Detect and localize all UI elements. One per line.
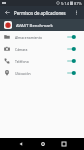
- button[interactable]: Recent apps: [55, 138, 73, 150]
- button[interactable]: Teléfono: [0, 55, 84, 67]
- staticText: 87%: [74, 1, 82, 6]
- button[interactable]: Cámara: [0, 43, 84, 55]
- staticText: Ubicación: [15, 71, 31, 76]
- staticText: Teléfono: [15, 59, 29, 64]
- button[interactable]: Back: [12, 138, 30, 150]
- staticText: Permisos de aplicaciones: [14, 10, 66, 16]
- button[interactable]: Home: [34, 138, 52, 150]
- button[interactable]: Toggle permission: [67, 44, 76, 54]
- button[interactable]: Back: [0, 6, 14, 19]
- button[interactable]: More options: [70, 6, 83, 19]
- button[interactable]: Almacenamiento: [0, 31, 84, 43]
- button[interactable]: AVAST Benchmark: [0, 19, 84, 31]
- button[interactable]: Toggle permission: [67, 32, 76, 42]
- button[interactable]: Toggle permission: [67, 56, 76, 66]
- staticText: Almacenamiento: [15, 35, 42, 40]
- staticText: AVAST Benchmark: [16, 22, 53, 28]
- button[interactable]: Ubicación: [0, 67, 84, 79]
- staticText: 5:14: [61, 1, 69, 6]
- staticText: Cámara: [15, 47, 28, 52]
- button[interactable]: Toggle permission: [67, 68, 76, 78]
